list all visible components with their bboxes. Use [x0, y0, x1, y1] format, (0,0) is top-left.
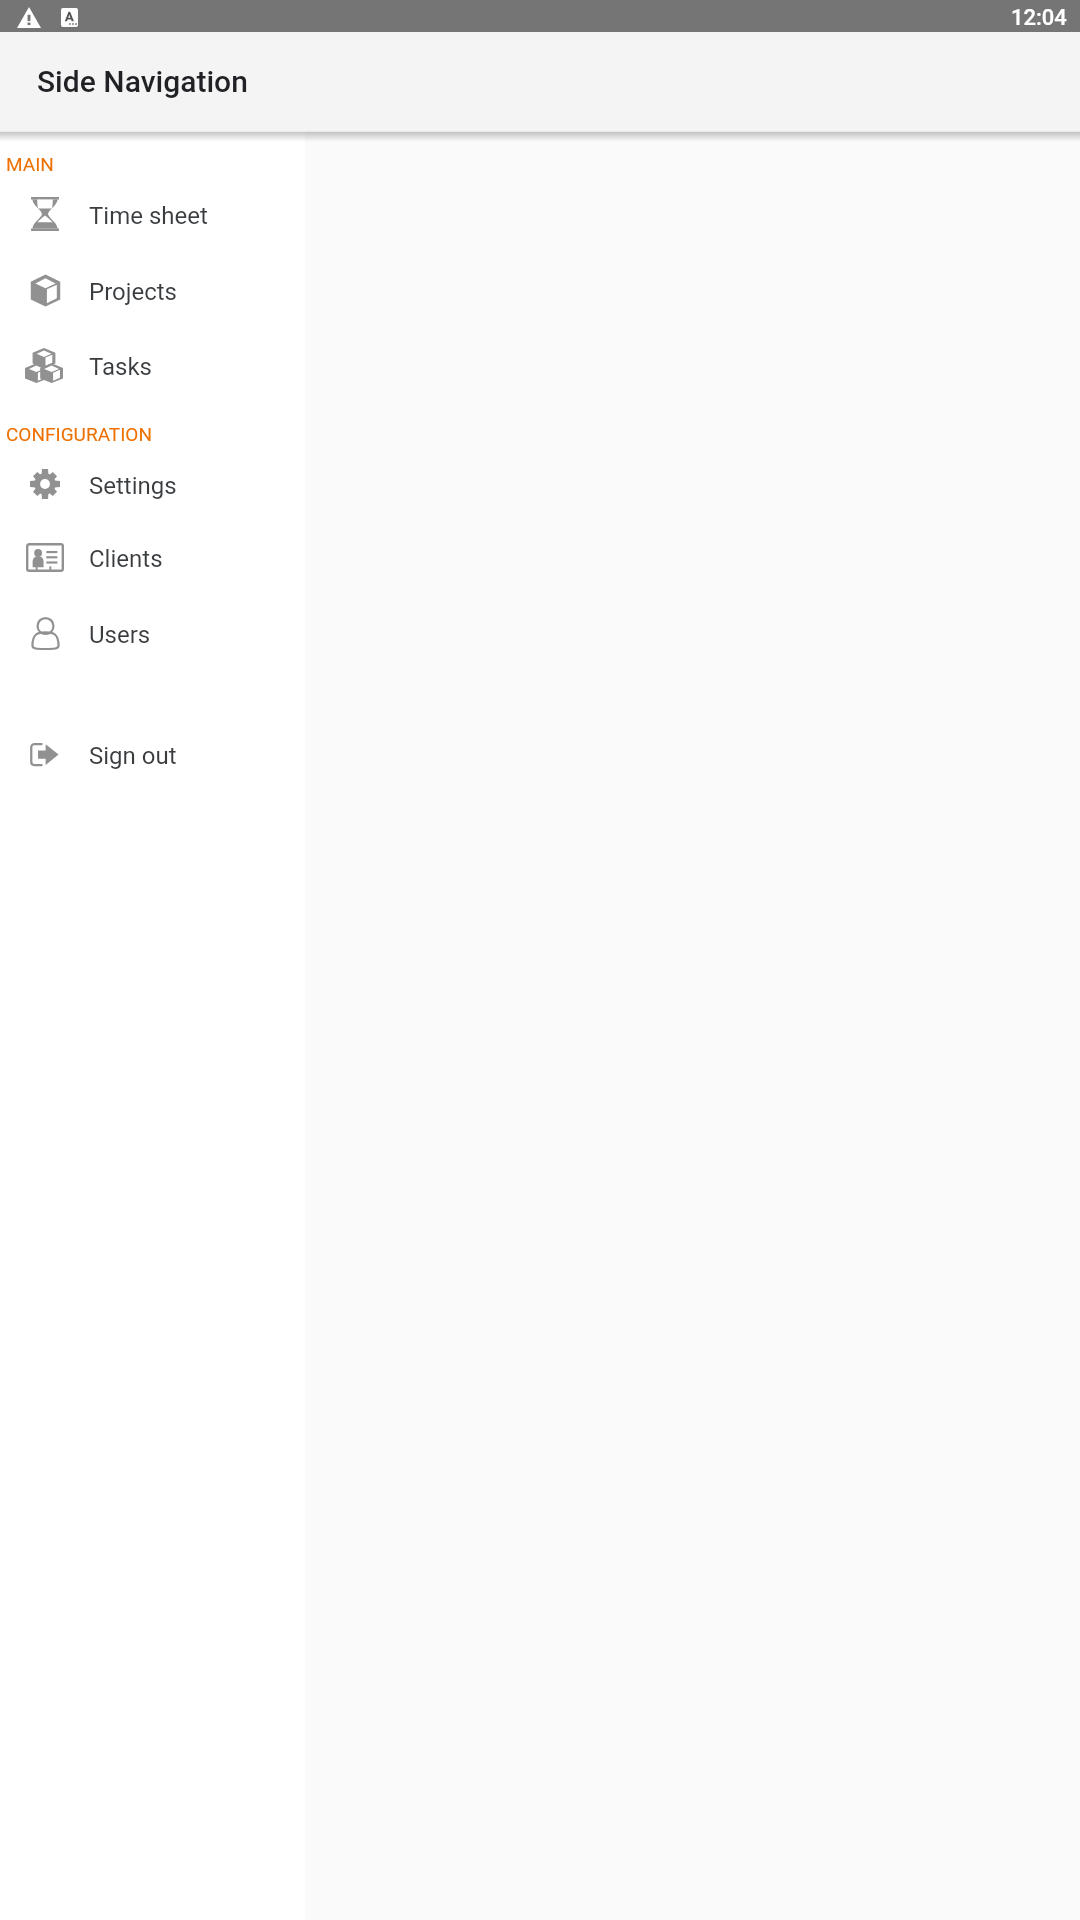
- staticText: Tasks: [89, 353, 152, 381]
- button[interactable]: Tasks: [0, 328, 305, 402]
- staticText: Projects: [89, 278, 177, 306]
- other: Accessibility: [61, 8, 78, 27]
- button[interactable]: Sign out: [0, 717, 305, 791]
- button[interactable]: Projects: [0, 253, 305, 327]
- other: Warning: [17, 7, 41, 28]
- staticText: Clients: [89, 545, 163, 573]
- staticText: CONFIGURATION: [6, 423, 152, 445]
- staticText: Users: [89, 621, 151, 649]
- staticText: 12:04: [1011, 5, 1067, 31]
- staticText: Sign out: [89, 742, 177, 770]
- staticText: MAIN: [6, 153, 54, 175]
- button[interactable]: Users: [0, 596, 305, 670]
- button[interactable]: Time sheet: [0, 177, 305, 251]
- staticText: Settings: [89, 472, 177, 500]
- staticText: Time sheet: [89, 202, 208, 230]
- staticText: Side Navigation: [37, 64, 248, 99]
- button[interactable]: Clients: [0, 520, 305, 594]
- button[interactable]: Settings: [0, 447, 305, 521]
- staticText: A: [65, 9, 74, 24]
